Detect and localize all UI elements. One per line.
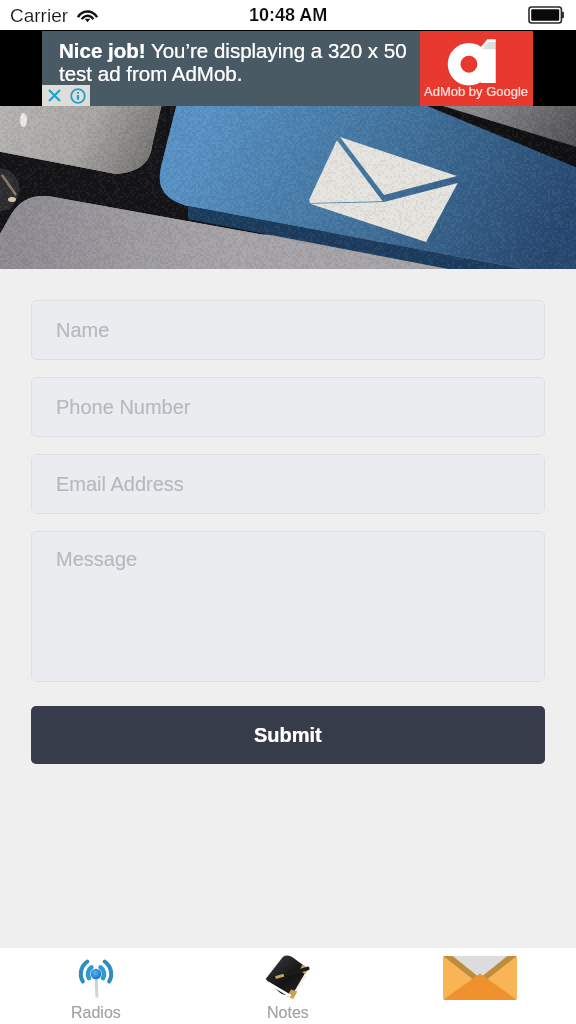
button[interactable]: Name — [31, 300, 545, 360]
staticText: 10:48 AM — [249, 5, 328, 25]
staticText: test ad from AdMob. — [59, 62, 243, 85]
button[interactable]: Message — [31, 531, 545, 682]
staticText: Carrier — [10, 5, 69, 26]
button[interactable]: AdMob by Google — [420, 31, 533, 106]
staticText: Notes — [267, 1004, 309, 1022]
button[interactable]: Phone Number — [31, 377, 545, 437]
button[interactable]: Submit — [31, 706, 545, 764]
button[interactable]: Email Address — [31, 454, 545, 514]
button[interactable]: Notes tab — [192, 948, 384, 1024]
staticText: Message — [56, 548, 138, 570]
staticText: Submit — [254, 724, 322, 746]
staticText: Email Address — [56, 473, 184, 495]
staticText: AdMob by Google — [424, 84, 529, 99]
staticText: Nice job! You’re displaying a 320 x 50 — [59, 39, 407, 62]
staticText: Name — [56, 319, 110, 341]
staticText: Radios — [71, 1004, 121, 1022]
button[interactable]: Nice job! You’re displaying a 320 x 50 — [42, 31, 420, 106]
button[interactable]: Close ad — [42, 85, 66, 106]
button[interactable]: Mail tab — [384, 948, 576, 1024]
button[interactable]: Radios tab — [0, 948, 192, 1024]
button[interactable]: Ad info — [66, 85, 90, 106]
staticText: Phone Number — [56, 396, 191, 418]
